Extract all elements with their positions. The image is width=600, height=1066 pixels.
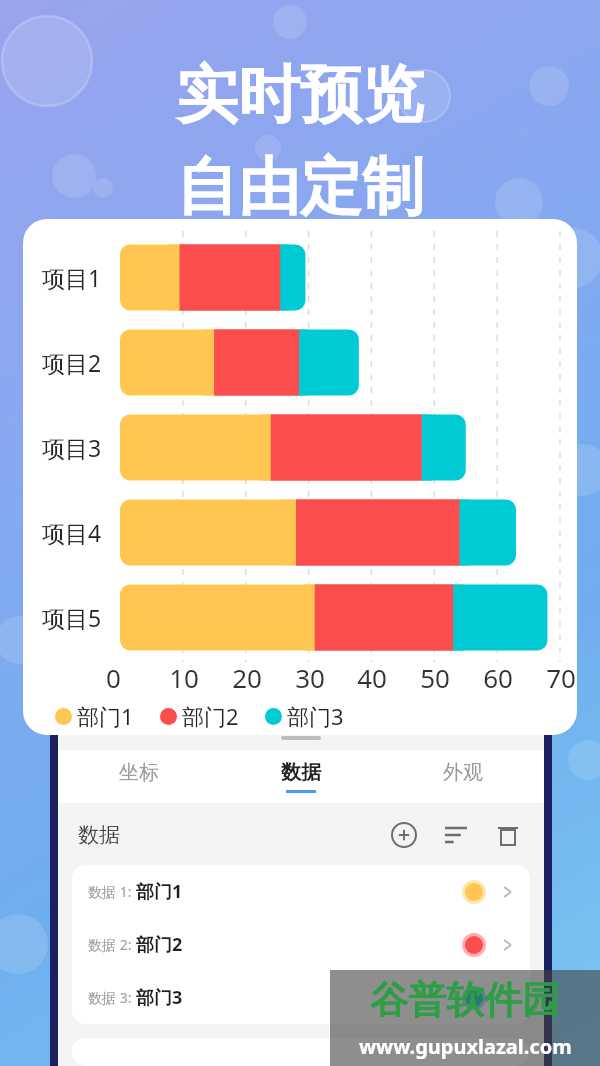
button[interactable]: Sort bbox=[438, 817, 474, 853]
staticText: 10 bbox=[169, 660, 199, 695]
staticText: 项目4 bbox=[42, 517, 102, 548]
button[interactable]: 数据 3: bbox=[72, 971, 530, 1024]
staticText: 数据 2: bbox=[88, 935, 136, 954]
staticText: 数据 bbox=[281, 760, 321, 785]
staticText: 50 bbox=[420, 660, 450, 695]
staticText: 部门2 bbox=[182, 701, 239, 731]
staticText: 部门1 bbox=[77, 701, 134, 731]
staticText: 数据 bbox=[78, 822, 120, 848]
staticText: 部门3 bbox=[287, 701, 344, 731]
staticText: 0 bbox=[106, 660, 121, 695]
staticText: 坐标 bbox=[119, 760, 159, 785]
button[interactable]: 外观 bbox=[382, 750, 544, 803]
staticText: 部门1 bbox=[136, 879, 183, 904]
staticText: 数据 1: bbox=[88, 882, 136, 901]
staticText: 项目1 bbox=[42, 262, 102, 293]
staticText: 70 bbox=[546, 660, 576, 695]
staticText: 项目3 bbox=[42, 432, 102, 463]
staticText: 数据 3: bbox=[88, 988, 136, 1007]
staticText: www.gupuxlazal.com bbox=[359, 1033, 572, 1060]
staticText: 外观 bbox=[443, 760, 483, 785]
staticText: 实时预览 bbox=[176, 56, 424, 134]
button[interactable]: 数据 2: bbox=[72, 918, 530, 971]
staticText: 自由定制 bbox=[176, 148, 424, 226]
staticText: 部门2 bbox=[136, 932, 183, 957]
staticText: 部门3 bbox=[136, 985, 183, 1010]
button[interactable]: 数据 1: bbox=[72, 865, 530, 918]
staticText: 项目5 bbox=[42, 602, 102, 633]
button[interactable]: 坐标 bbox=[58, 750, 220, 803]
button[interactable]: Delete bbox=[490, 817, 526, 853]
staticText: 60 bbox=[483, 660, 513, 695]
button[interactable]: Add bbox=[386, 817, 422, 853]
staticText: 30 bbox=[295, 660, 325, 695]
staticText: 20 bbox=[232, 660, 262, 695]
staticText: 项目2 bbox=[42, 347, 102, 378]
staticText: 40 bbox=[357, 660, 387, 695]
button[interactable]: 数据 bbox=[220, 750, 382, 803]
staticText: 谷普软件园 bbox=[370, 976, 560, 1024]
